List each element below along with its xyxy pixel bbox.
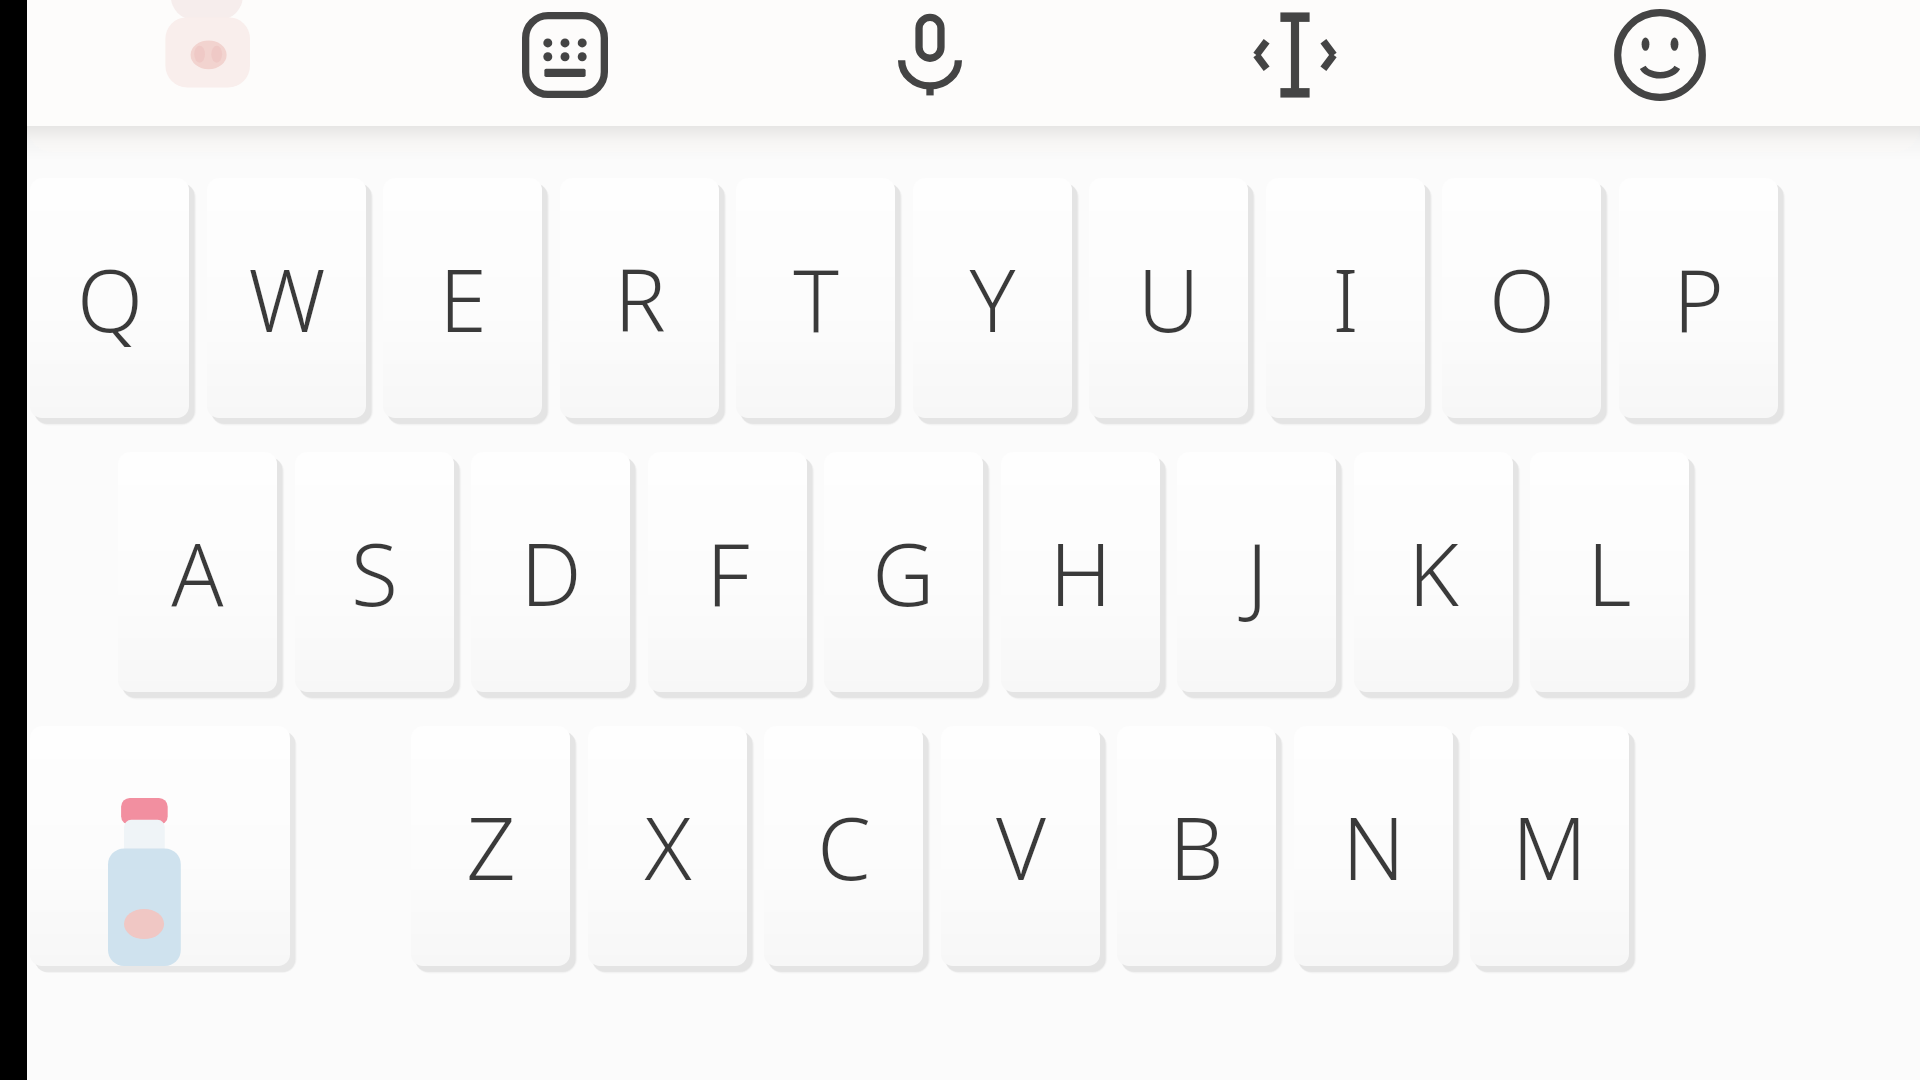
- staticText: Z: [466, 788, 516, 905]
- button[interactable]: V: [941, 726, 1100, 966]
- button[interactable]: U: [1089, 178, 1248, 418]
- staticText: R: [614, 240, 666, 357]
- button[interactable]: Move cursor: [1235, 0, 1355, 115]
- button[interactable]: Voice input: [870, 0, 990, 115]
- button[interactable]: I: [1266, 178, 1425, 418]
- staticText: B: [1169, 788, 1224, 905]
- button[interactable]: O: [1442, 178, 1601, 418]
- staticText: X: [644, 788, 692, 905]
- button[interactable]: M: [1470, 726, 1629, 966]
- staticText: U: [1137, 240, 1200, 357]
- button[interactable]: X: [588, 726, 747, 966]
- staticText: C: [817, 788, 871, 905]
- staticText: Q: [77, 240, 143, 357]
- button[interactable]: P: [1619, 178, 1778, 418]
- button[interactable]: T: [736, 178, 895, 418]
- button[interactable]: Z: [411, 726, 570, 966]
- staticText: T: [793, 240, 839, 357]
- button[interactable]: E: [383, 178, 542, 418]
- staticText: D: [520, 514, 582, 631]
- staticText: S: [351, 514, 398, 631]
- button[interactable]: W: [207, 178, 366, 418]
- staticText: L: [1587, 514, 1632, 631]
- staticText: A: [171, 514, 224, 631]
- button[interactable]: Emoji: [1600, 0, 1720, 115]
- staticText: O: [1489, 240, 1555, 357]
- staticText: W: [248, 240, 326, 357]
- staticText: Y: [969, 240, 1016, 357]
- button[interactable]: S: [295, 452, 454, 692]
- button[interactable]: G: [824, 452, 983, 692]
- staticText: K: [1408, 514, 1459, 631]
- button[interactable]: D: [471, 452, 630, 692]
- button[interactable]: Sticker: [160, 0, 250, 90]
- button[interactable]: Q: [30, 178, 189, 418]
- staticText: G: [872, 514, 935, 631]
- button[interactable]: Keyboard layout: [505, 0, 625, 115]
- button[interactable]: L: [1530, 452, 1689, 692]
- staticText: I: [1332, 240, 1359, 357]
- button[interactable]: F: [648, 452, 807, 692]
- button[interactable]: B: [1117, 726, 1276, 966]
- staticText: M: [1512, 788, 1587, 905]
- button[interactable]: K: [1354, 452, 1513, 692]
- staticText: N: [1342, 788, 1405, 905]
- button[interactable]: H: [1001, 452, 1160, 692]
- staticText: P: [1673, 240, 1724, 357]
- button[interactable]: Y: [913, 178, 1072, 418]
- staticText: F: [706, 514, 750, 631]
- staticText: E: [439, 240, 487, 357]
- button[interactable]: A: [118, 452, 277, 692]
- button[interactable]: Shift: [30, 726, 290, 966]
- staticText: J: [1246, 514, 1268, 631]
- staticText: V: [996, 788, 1046, 905]
- button[interactable]: C: [764, 726, 923, 966]
- staticText: H: [1049, 514, 1112, 631]
- button[interactable]: J: [1177, 452, 1336, 692]
- button[interactable]: R: [560, 178, 719, 418]
- button[interactable]: N: [1294, 726, 1453, 966]
